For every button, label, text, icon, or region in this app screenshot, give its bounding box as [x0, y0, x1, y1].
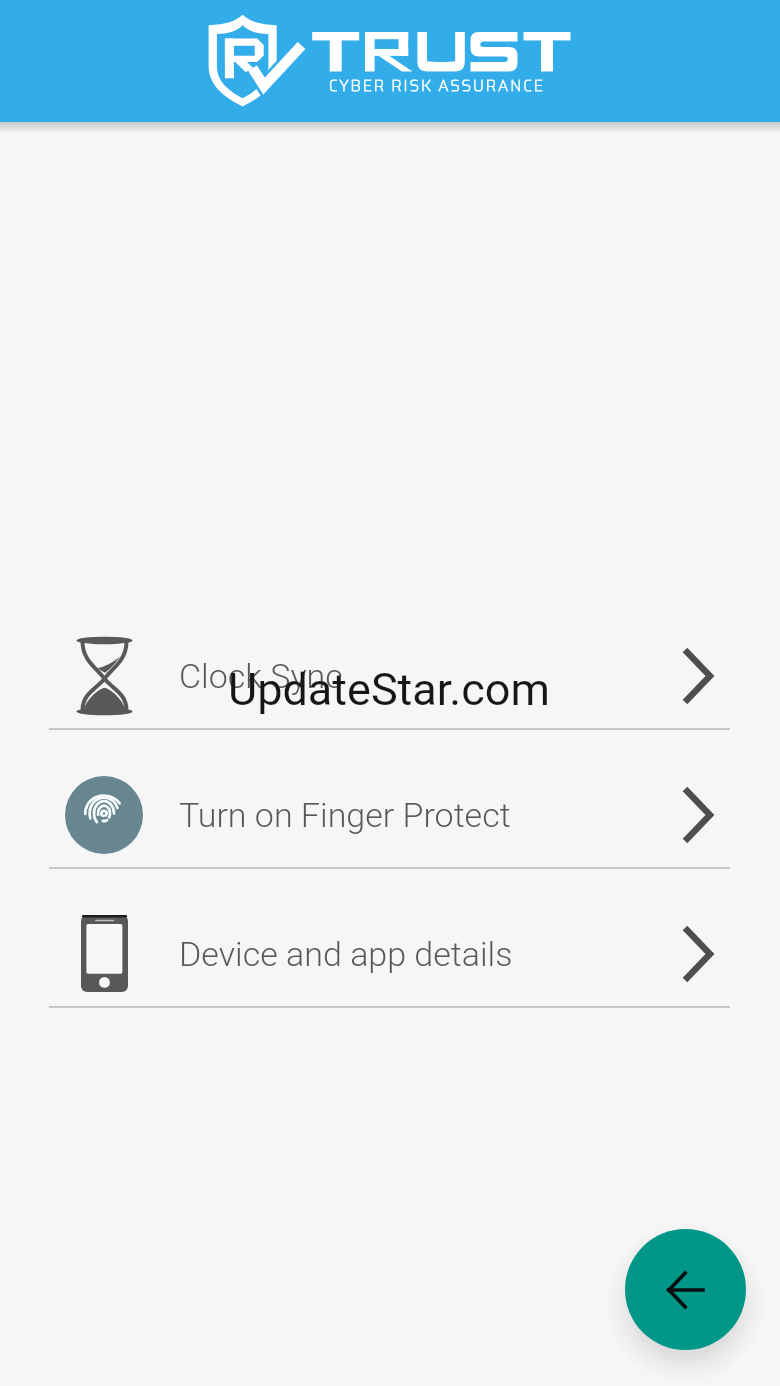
button[interactable]: Device and app details	[0, 869, 780, 1008]
button[interactable]: Turn on Finger Protect	[0, 730, 780, 869]
staticText: CYBER RISK ASSURANCE	[329, 74, 545, 98]
button[interactable]: Back	[625, 1229, 746, 1350]
staticText: UpdateStar.com	[228, 663, 550, 716]
staticText: Turn on Finger Protect	[179, 795, 511, 835]
staticText: Device and app details	[179, 934, 513, 974]
staticText: Clock Sync	[179, 656, 343, 696]
button[interactable]: Clock Sync	[0, 591, 780, 730]
